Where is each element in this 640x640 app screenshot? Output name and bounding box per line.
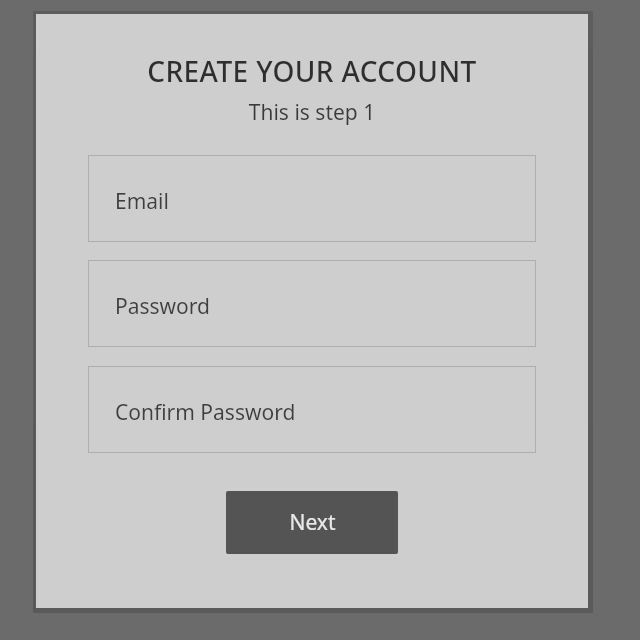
button[interactable]: Next — [226, 491, 398, 554]
staticText: Password — [115, 292, 210, 321]
button[interactable]: Confirm Password — [88, 366, 536, 453]
button[interactable]: Email — [88, 155, 536, 242]
staticText: CREATE YOUR ACCOUNT — [36, 52, 588, 90]
button[interactable]: Password — [88, 260, 536, 347]
staticText: This is step 1 — [36, 98, 588, 127]
staticText: Email — [115, 187, 169, 216]
staticText: Next — [289, 508, 336, 537]
staticText: Confirm Password — [115, 398, 296, 427]
